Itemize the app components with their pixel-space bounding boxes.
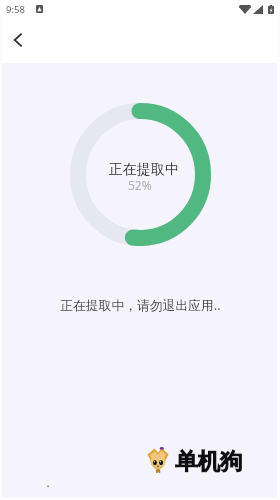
staticText: 9:58 xyxy=(6,3,25,16)
staticText: 正在提取中 xyxy=(109,161,179,179)
staticText: 52% xyxy=(128,177,152,193)
staticText: 单机狗 xyxy=(175,447,243,475)
button[interactable]: Back xyxy=(6,28,30,52)
staticText: 正在提取中，请勿退出应用.. xyxy=(60,296,221,313)
